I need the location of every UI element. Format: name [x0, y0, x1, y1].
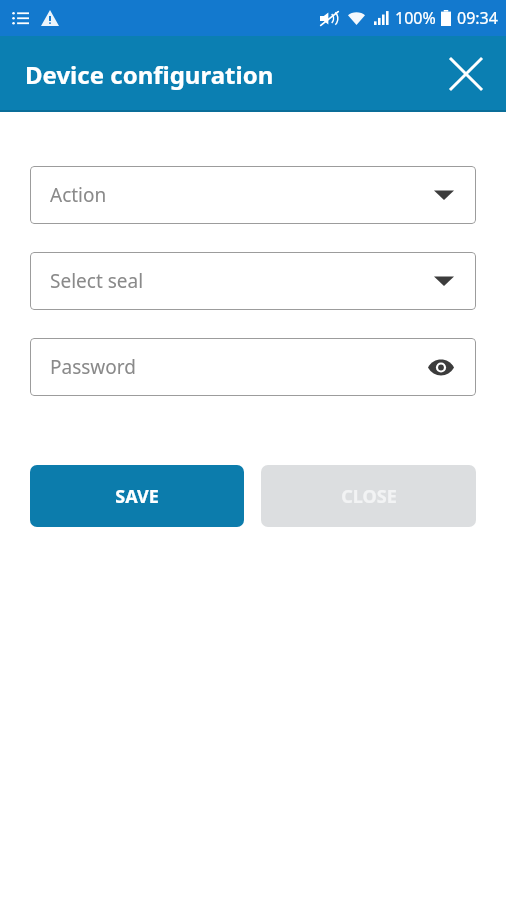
button[interactable]: Close	[440, 48, 492, 100]
button[interactable]: Select seal	[30, 252, 476, 310]
staticText: Device configuration	[25, 58, 274, 91]
button[interactable]: SAVE	[30, 465, 244, 527]
button[interactable]: Password	[30, 338, 476, 396]
staticText: Action	[50, 182, 434, 208]
staticText: Select seal	[50, 268, 434, 294]
staticText: CLOSE	[341, 484, 397, 509]
button[interactable]: Action	[30, 166, 476, 224]
staticText: 09:34	[457, 7, 498, 29]
staticText: 100%	[395, 7, 436, 29]
staticText: SAVE	[115, 484, 159, 509]
staticText: Password	[50, 354, 428, 380]
button[interactable]: CLOSE	[261, 465, 476, 527]
